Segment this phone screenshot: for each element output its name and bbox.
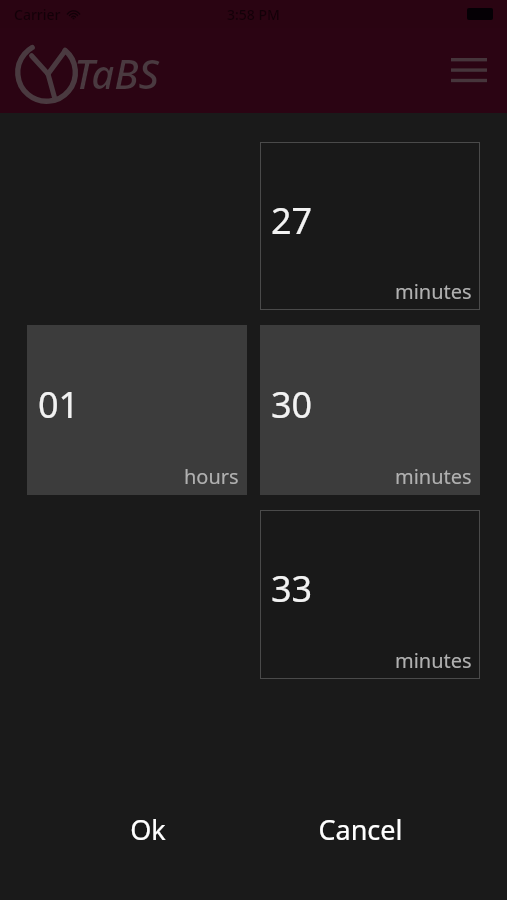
- staticText: 30: [271, 380, 313, 429]
- staticText: minutes: [395, 278, 472, 305]
- button[interactable]: Ok: [68, 804, 228, 854]
- staticText: Carrier: [14, 5, 61, 24]
- staticText: Cancel: [318, 811, 403, 848]
- button[interactable]: 33: [260, 510, 480, 679]
- staticText: 33: [271, 564, 313, 613]
- staticText: TaBS: [74, 46, 159, 100]
- staticText: 27: [271, 196, 313, 245]
- staticText: minutes: [395, 463, 472, 490]
- staticText: minutes: [395, 647, 472, 674]
- button[interactable]: Menu: [447, 49, 491, 93]
- button[interactable]: 30: [260, 325, 480, 495]
- button[interactable]: Cancel: [280, 804, 440, 854]
- staticText: Ok: [130, 811, 166, 848]
- button[interactable]: 01: [27, 325, 247, 495]
- staticText: hours: [184, 463, 239, 490]
- staticText: 3:58 PM: [227, 5, 280, 24]
- button[interactable]: 27: [260, 142, 480, 310]
- staticText: 01: [38, 380, 80, 429]
